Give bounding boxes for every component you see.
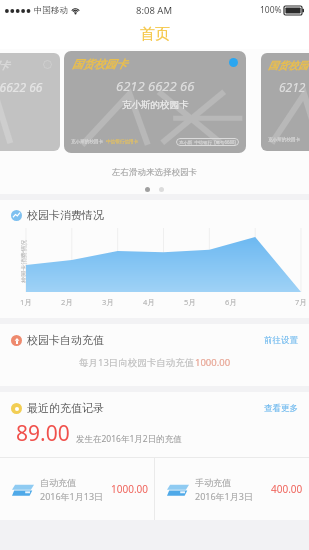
staticText: 6212 6622 66 — [116, 77, 195, 95]
staticText: 校园卡消费情况 — [27, 208, 104, 222]
staticText: 前往设置 — [264, 335, 298, 346]
button[interactable]: 前往设置 — [264, 335, 298, 346]
staticText: 国货校园卡 — [0, 59, 9, 72]
staticText: 2月 — [61, 297, 73, 307]
staticText: 89.00 — [16, 419, 70, 448]
staticText: 400.00 — [271, 482, 303, 496]
staticText: 左右滑动来选择校园卡 — [112, 167, 197, 178]
staticText: 1月 — [20, 297, 32, 307]
staticText: 中信银行信用卡 — [106, 139, 139, 145]
staticText: 自动充值 — [40, 477, 76, 488]
staticText: 7月 — [295, 297, 307, 307]
staticText: 查看更多 — [264, 403, 298, 414]
staticText: 手动充值 — [195, 477, 231, 488]
button[interactable]: 国货校园卡 — [261, 53, 309, 151]
button[interactable]: 国货校园卡 — [0, 53, 60, 151]
staticText: 6212 6622 66 — [0, 79, 43, 95]
staticText: 6月 — [225, 297, 237, 307]
staticText: 2016年1月3日 — [195, 490, 253, 502]
staticText: 克小斯的校园卡 — [268, 137, 301, 143]
button[interactable]: 自动充值 — [0, 458, 154, 520]
staticText: 校园卡消费情况 — [20, 239, 28, 283]
staticText: 发生在2016年1月2日的充值 — [76, 433, 182, 445]
staticText: 1000.00 — [111, 482, 148, 496]
staticText: 克小斯的校园卡 — [71, 139, 104, 145]
staticText: 2016年1月13日 — [40, 490, 104, 502]
staticText: 8:08 AM — [136, 4, 173, 17]
staticText: 首页 — [140, 25, 170, 44]
staticText: 最近的充值记录 — [27, 401, 104, 415]
staticText: 校园卡自动充值 — [27, 333, 104, 347]
button[interactable]: 手动充值 — [155, 458, 309, 520]
staticText: 100% — [260, 4, 282, 16]
staticText: 国货校园卡 — [72, 57, 127, 71]
staticText: 5月 — [184, 297, 196, 307]
staticText: 国货校园卡 — [268, 59, 309, 72]
staticText: 3月 — [102, 297, 114, 307]
staticText: 6212 6622 66 — [279, 79, 309, 95]
staticText: 克小斯的校园卡 — [122, 99, 189, 111]
button[interactable]: 国货校园卡 — [64, 51, 246, 153]
staticText: 中国移动 — [34, 5, 68, 16]
staticText: 克小斯 中信银行 (尾号6688) — [179, 139, 236, 145]
button[interactable]: 查看更多 — [264, 403, 298, 414]
staticText: 4月 — [143, 297, 155, 307]
staticText: 每月13日向校园卡自动充值 — [79, 356, 195, 369]
staticText: 1000.00 — [195, 356, 231, 369]
